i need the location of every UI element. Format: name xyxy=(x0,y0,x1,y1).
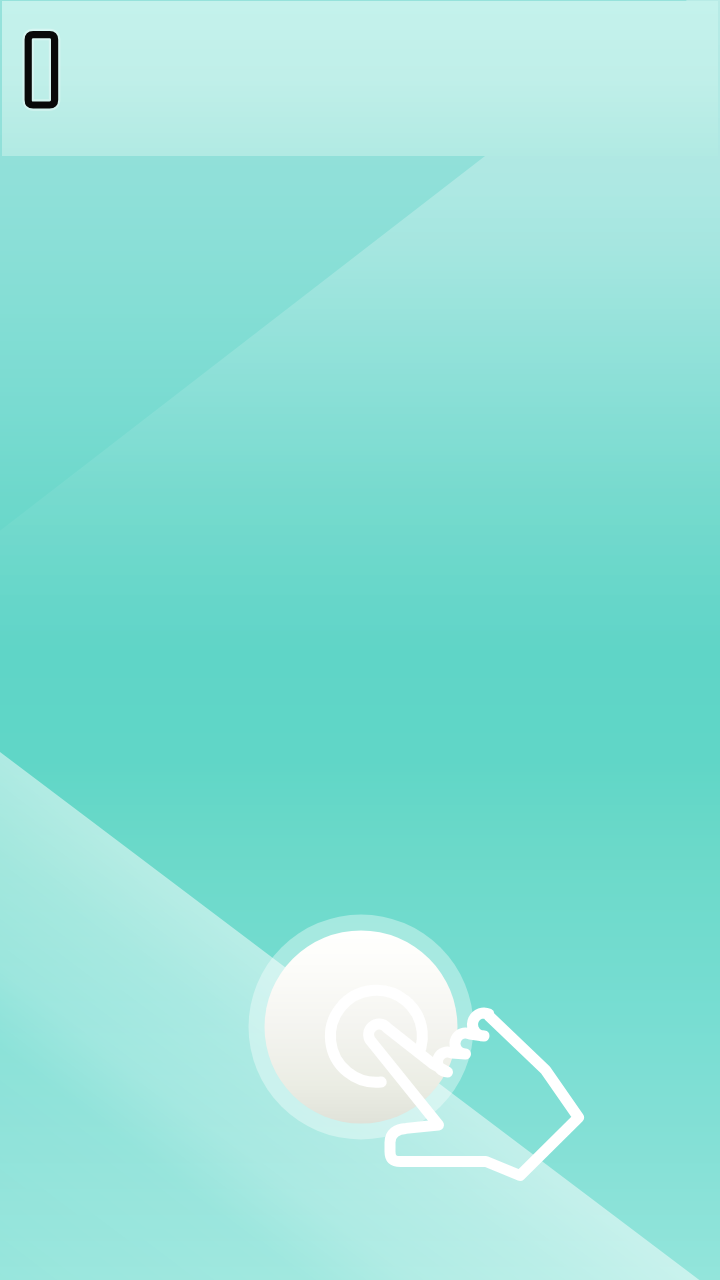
button[interactable]: Menu xyxy=(0,0,84,120)
button[interactable]: Tap here xyxy=(0,0,720,1280)
